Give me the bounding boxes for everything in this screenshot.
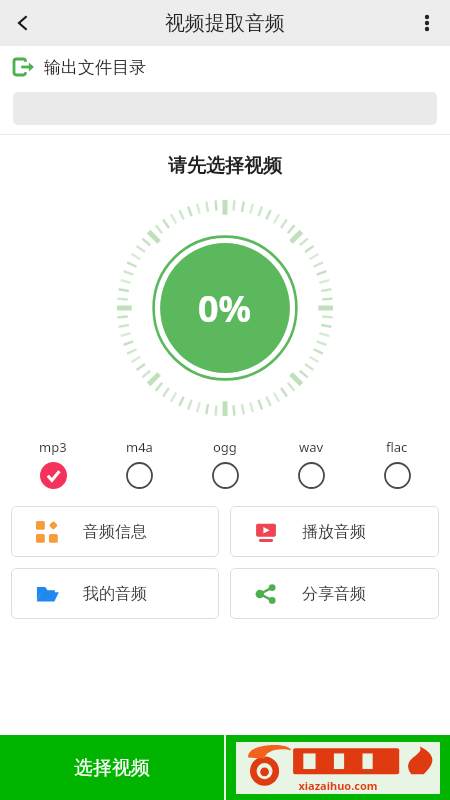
button[interactable]: 分享音频 bbox=[230, 568, 439, 619]
staticText: 视频提取音频 bbox=[165, 11, 285, 36]
button[interactable]: mp3 bbox=[10, 438, 96, 489]
staticText: 请先选择视频 bbox=[0, 154, 450, 178]
staticText: m4a bbox=[126, 438, 153, 456]
button[interactable]: ogg bbox=[182, 438, 268, 489]
staticText: wav bbox=[299, 438, 324, 456]
button[interactable]: Back bbox=[0, 0, 46, 46]
button[interactable]: More options bbox=[404, 0, 450, 46]
button[interactable]: flac bbox=[354, 438, 440, 489]
button[interactable]: xiazaihuo.com bbox=[226, 735, 450, 800]
button[interactable]: 选择视频 bbox=[0, 735, 224, 800]
button[interactable]: 输出文件目录 bbox=[0, 46, 450, 88]
staticText: mp3 bbox=[39, 438, 67, 456]
button[interactable]: 音频信息 bbox=[11, 506, 219, 557]
button[interactable]: 播放音频 bbox=[230, 506, 439, 557]
staticText: 播放音频 bbox=[302, 522, 366, 542]
staticText: 我的音频 bbox=[83, 584, 147, 604]
staticText: 输出文件目录 bbox=[44, 57, 146, 78]
staticText: ogg bbox=[213, 438, 237, 456]
staticText: xiazaihuo.com bbox=[298, 778, 378, 793]
staticText: 选择视频 bbox=[74, 756, 150, 780]
button[interactable]: m4a bbox=[96, 438, 182, 489]
staticText: 分享音频 bbox=[302, 584, 366, 604]
button[interactable]: 我的音频 bbox=[11, 568, 219, 619]
staticText: 音频信息 bbox=[83, 522, 147, 542]
staticText: 0% bbox=[198, 284, 252, 333]
staticText: flac bbox=[386, 438, 408, 456]
button[interactable]: wav bbox=[268, 438, 354, 489]
